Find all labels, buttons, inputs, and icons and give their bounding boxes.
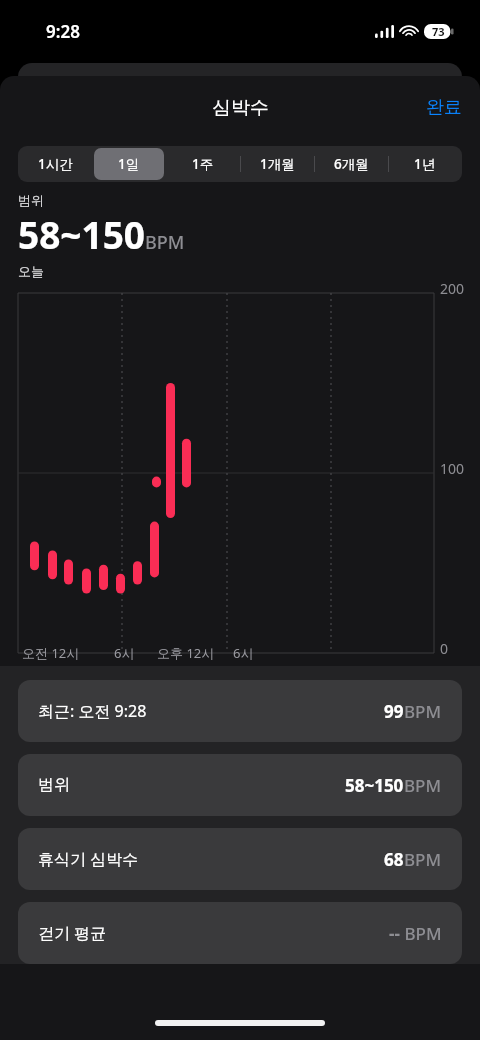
staticText: 범위 — [38, 775, 70, 795]
staticText: 58~150 — [345, 774, 404, 797]
staticText: 6시 — [114, 644, 135, 662]
staticText: 완료 — [426, 96, 462, 119]
button[interactable]: 1년 — [388, 146, 462, 182]
button[interactable]: 완료 — [408, 88, 480, 127]
button[interactable]: 1시간 — [18, 146, 92, 182]
staticText: BPM — [404, 774, 442, 797]
staticText: 100 — [440, 459, 465, 478]
button[interactable]: 걷기 평균 — [18, 902, 462, 964]
staticText: 오전 12시 — [22, 644, 80, 662]
staticText: 6시 — [233, 644, 254, 662]
staticText: 범위 — [18, 192, 44, 208]
staticText: BPM — [404, 700, 442, 723]
staticText: 58~150 — [18, 209, 145, 259]
staticText: 걷기 평균 — [38, 922, 107, 944]
staticText: 1주 — [192, 155, 214, 173]
staticText: 6개월 — [334, 155, 369, 173]
button[interactable]: 범위 — [18, 754, 462, 816]
staticText: 9:28 — [46, 20, 80, 43]
staticText: 73 — [432, 24, 445, 39]
staticText: 1개월 — [260, 155, 295, 173]
button[interactable]: 최근: 오전 9:28 — [18, 680, 462, 742]
staticText: 68 — [384, 848, 404, 871]
staticText: 1시간 — [38, 155, 73, 173]
staticText: -- — [389, 922, 400, 945]
staticText: 1일 — [118, 155, 140, 173]
button[interactable]: 휴식기 심박수 — [18, 828, 462, 890]
button[interactable]: 1주 — [166, 146, 240, 182]
staticText: 심박수 — [212, 96, 269, 120]
button[interactable]: 6개월 — [314, 146, 388, 182]
staticText: 오후 12시 — [157, 644, 215, 662]
button[interactable]: 1개월 — [240, 146, 314, 182]
staticText: 최근: 오전 9:28 — [38, 700, 147, 722]
staticText: BPM — [400, 922, 442, 945]
staticText: 200 — [440, 279, 465, 298]
button[interactable]: 1일 — [92, 146, 166, 182]
staticText: 오늘 — [18, 263, 44, 279]
staticText: 99 — [384, 700, 404, 723]
staticText: 0 — [440, 639, 449, 658]
staticText: BPM — [145, 230, 185, 255]
staticText: BPM — [404, 848, 442, 871]
staticText: 1년 — [414, 155, 436, 173]
staticText: 휴식기 심박수 — [38, 848, 139, 870]
